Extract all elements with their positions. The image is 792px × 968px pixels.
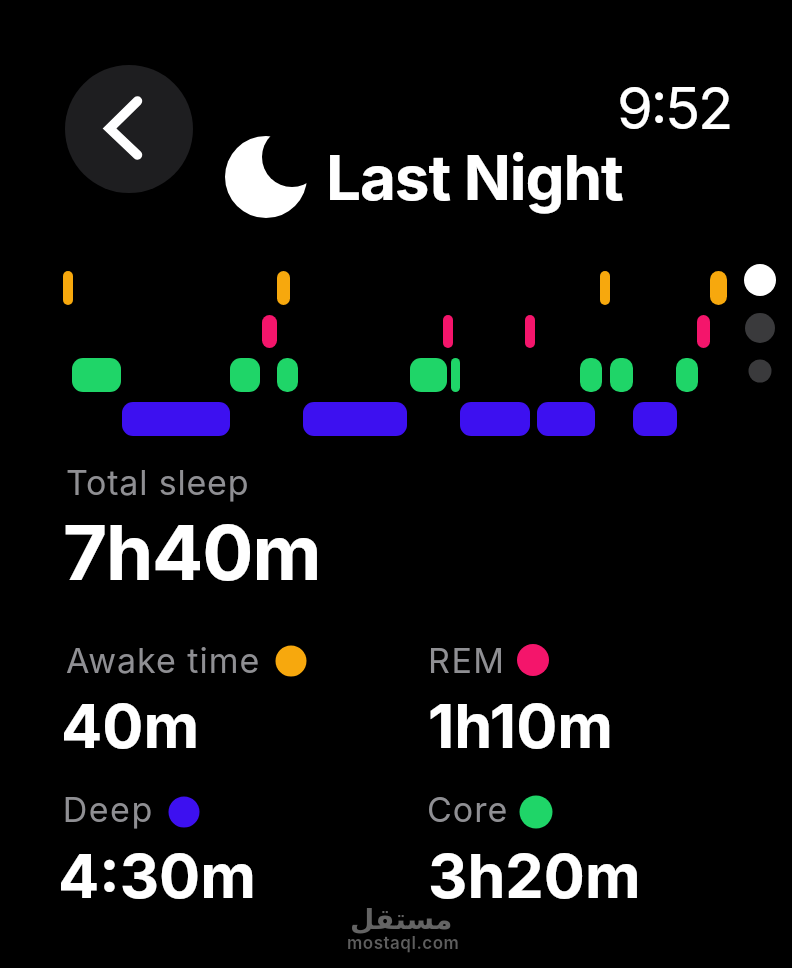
staticText: 4:30m xyxy=(58,839,256,913)
staticText: مستقل xyxy=(350,903,453,936)
staticText: Deep xyxy=(62,789,153,830)
staticText: Total sleep xyxy=(66,462,250,503)
button[interactable] xyxy=(65,65,193,193)
staticText: Core xyxy=(427,789,509,830)
staticText: Awake time xyxy=(66,640,261,681)
staticText: 7h40m xyxy=(63,506,321,598)
staticText: 40m xyxy=(61,689,200,763)
staticText: 3h20m xyxy=(428,839,641,913)
staticText: 9:52 xyxy=(617,73,732,143)
staticText: REM xyxy=(428,640,506,681)
staticText: 1h10m xyxy=(428,689,613,763)
staticText: mostaql.com xyxy=(347,933,460,954)
staticText: Last Night xyxy=(326,140,623,215)
